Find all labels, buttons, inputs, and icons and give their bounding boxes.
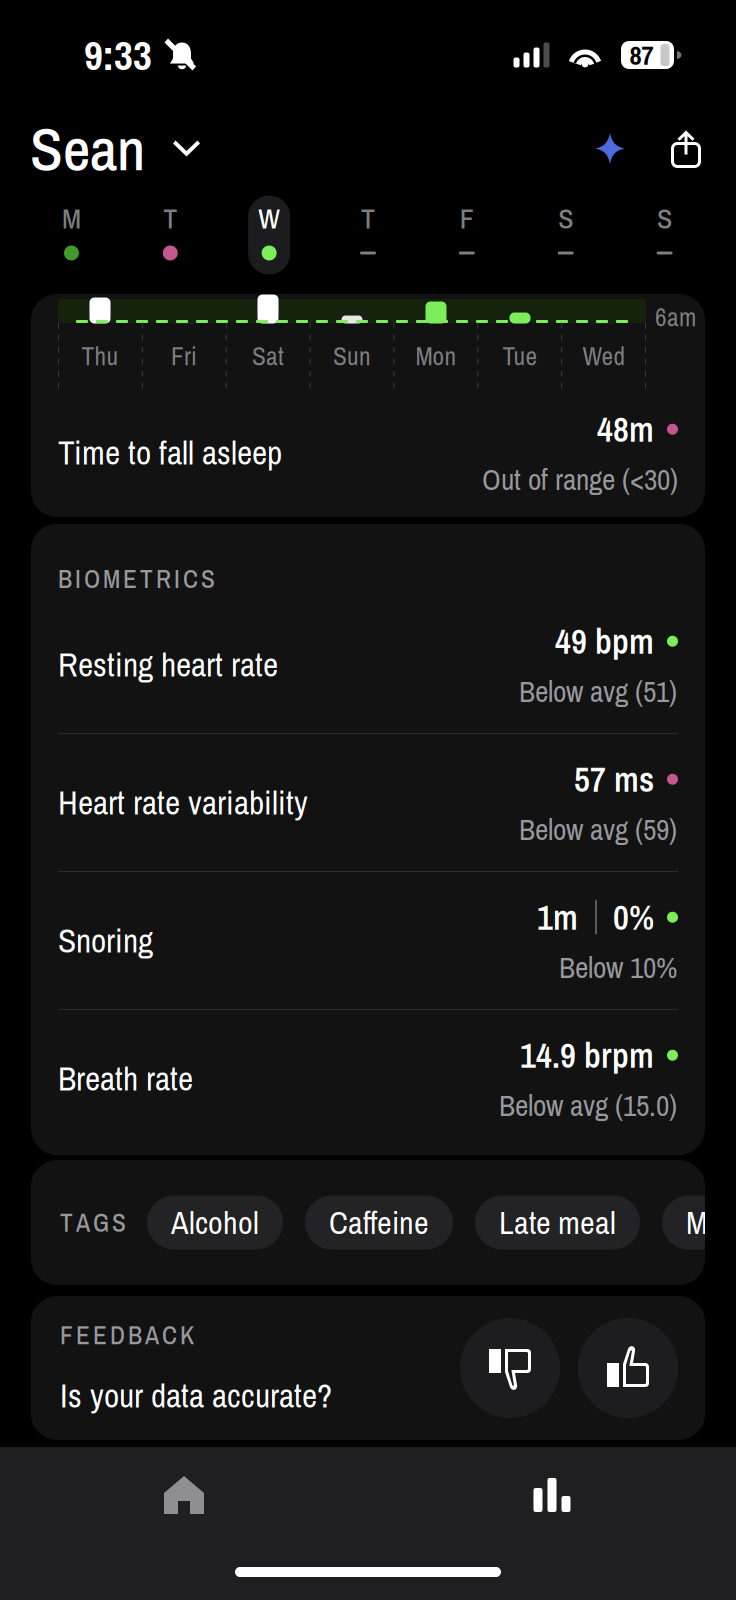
button[interactable]: W [220,195,319,274]
staticText: S [558,200,573,237]
staticText: Breath rate [58,1056,193,1101]
staticText: Tue [502,339,537,373]
staticText: Below avg (59) [519,810,677,849]
staticText: 9:33 [84,27,152,83]
staticText: 48m [597,406,654,453]
staticText: Fri [171,339,197,373]
button[interactable]: Data is accurate [578,1318,678,1418]
staticText: 14.9 brpm [520,1032,654,1079]
staticText: Is your data accurate? [60,1373,332,1418]
button[interactable]: M [22,195,121,274]
staticText: Resting heart rate [58,642,278,687]
staticText: F [460,200,474,237]
staticText: Late meal [499,1201,616,1244]
staticText: Below avg (15.0) [499,1086,677,1125]
staticText: Caffeine [329,1201,429,1244]
staticText: Out of range (<30) [482,460,678,499]
button[interactable]: Share [648,107,724,189]
staticText: Meditation [686,1201,736,1244]
button[interactable]: S [615,195,714,274]
button[interactable]: Meditation [662,1195,736,1249]
staticText: Sean [30,108,145,189]
staticText: 49 bpm [555,618,654,665]
button[interactable]: Trends [368,1447,736,1543]
staticText: Mon [415,339,456,373]
staticText: F E E D B A C K [60,1318,194,1352]
staticText: Below 10% [559,948,677,987]
staticText: 6am [655,300,696,334]
staticText: Sun [333,339,371,373]
button[interactable]: F [417,195,516,274]
staticText: 1m [537,894,578,941]
button[interactable]: Home [0,1447,368,1543]
button[interactable]: S [516,195,615,274]
staticText: T [163,200,177,237]
staticText: Below avg (51) [519,672,677,711]
button[interactable]: Alcohol [147,1195,283,1249]
staticText: B I O M E T R I C S [58,562,215,596]
staticText: Snoring [58,918,153,963]
staticText: 87 [629,37,653,73]
staticText: T A G S [60,1205,126,1239]
staticText: Alcohol [171,1201,259,1244]
staticText: 57 ms [574,756,654,803]
button[interactable]: Late meal [475,1195,640,1249]
staticText: Heart rate variability [58,780,308,825]
staticText: Thu [81,339,118,373]
button[interactable]: AI insights [572,107,648,189]
staticText: W [258,200,280,237]
staticText: S [657,200,672,237]
staticText: Wed [582,339,625,373]
staticText: T [361,200,375,237]
staticText: Time to fall asleep [58,430,282,475]
button[interactable]: T [319,195,417,274]
button[interactable]: Data is not accurate [460,1318,560,1418]
staticText: 0% [613,894,654,941]
staticText: Sat [252,339,284,373]
button[interactable]: Sean [0,107,212,189]
staticText: M [62,200,81,237]
button[interactable]: T [121,195,220,274]
button[interactable]: Caffeine [305,1195,453,1249]
